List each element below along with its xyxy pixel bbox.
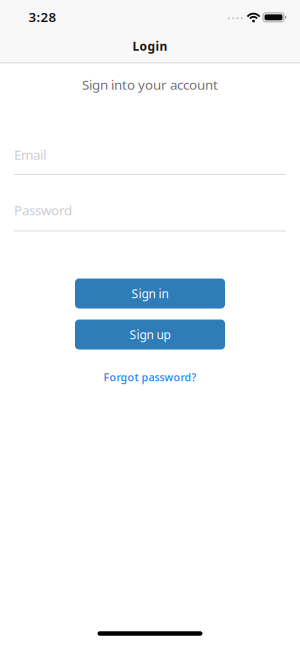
staticText: Sign in (131, 285, 168, 301)
staticText: Login (132, 38, 167, 54)
button[interactable]: Forgot password? (103, 370, 196, 384)
staticText: Email (14, 146, 46, 163)
textField[interactable]: Email (14, 144, 286, 164)
staticText: Password (14, 201, 72, 219)
textField[interactable]: Password (14, 200, 286, 220)
button[interactable]: Sign up (75, 319, 225, 349)
staticText: Forgot password? (103, 370, 196, 384)
staticText: Sign into your account (82, 76, 218, 93)
staticText: Sign up (129, 326, 170, 342)
button[interactable]: Sign in (75, 278, 225, 308)
staticText: 3:28 (28, 8, 56, 26)
